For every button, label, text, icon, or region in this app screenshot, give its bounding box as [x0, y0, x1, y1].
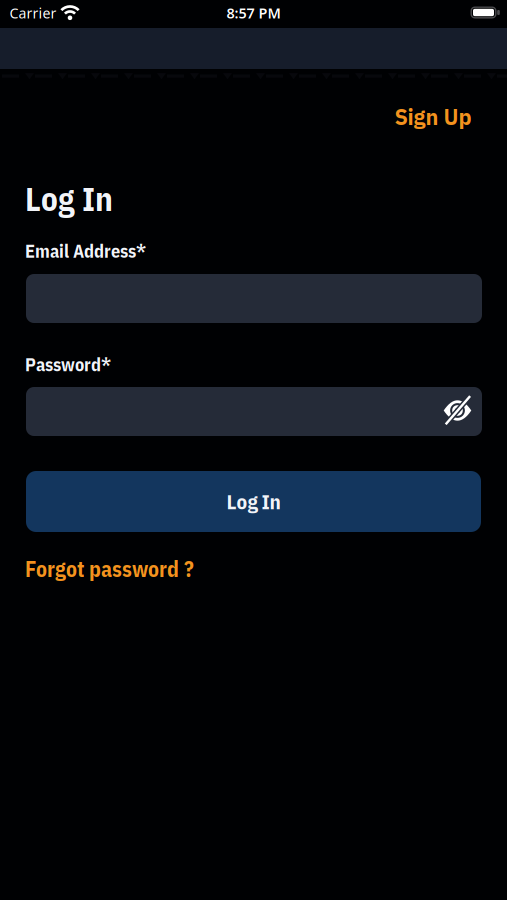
button[interactable]: Log In — [26, 471, 481, 532]
button[interactable]: Sign Up — [394, 103, 471, 131]
button[interactable]: Forgot password ? — [25, 555, 194, 583]
staticText: Log In — [226, 488, 280, 515]
staticText: Log In — [25, 177, 113, 220]
staticText: Carrier — [9, 3, 56, 23]
staticText: Password* — [25, 353, 111, 376]
staticText: Forgot password ? — [25, 555, 194, 583]
staticText: Email Address* — [25, 239, 146, 263]
staticText: 8:57 PM — [226, 3, 280, 23]
button[interactable]: Show password — [440, 393, 474, 427]
staticText: Sign Up — [394, 103, 471, 131]
